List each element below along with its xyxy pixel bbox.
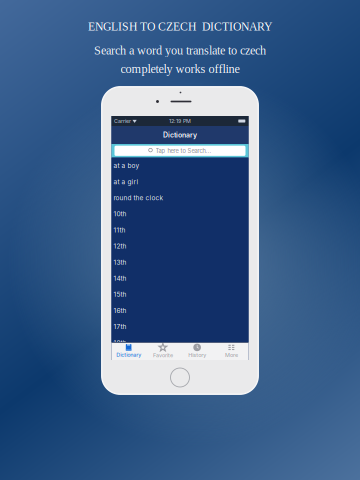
staticText: at a girl	[113, 178, 138, 186]
staticText: Carrier	[114, 118, 131, 124]
button[interactable]: 11th	[111, 222, 248, 238]
staticText: 10th	[113, 210, 126, 218]
staticText: at a boy	[113, 162, 139, 170]
staticText: Dictionary	[116, 351, 141, 358]
button[interactable]: 15th	[111, 286, 248, 302]
button[interactable]: Tap here to Search...	[111, 144, 248, 158]
button[interactable]: 18th	[111, 335, 248, 351]
button[interactable]: More	[214, 342, 248, 360]
staticText: History	[188, 352, 206, 358]
staticText: 13th	[113, 258, 126, 266]
button[interactable]: at a boy	[111, 158, 248, 174]
staticText: 16th	[113, 307, 126, 314]
staticText: Dictionary	[163, 131, 197, 139]
staticText: round the clock	[113, 194, 163, 202]
staticText: More	[225, 352, 238, 358]
staticText: 18th	[113, 339, 126, 347]
button[interactable]: 10th	[111, 206, 248, 222]
button[interactable]: 14th	[111, 270, 248, 286]
button[interactable]: 17th	[111, 319, 248, 335]
button[interactable]: Dictionary	[111, 342, 146, 360]
staticText: completely works offline	[120, 62, 239, 76]
button[interactable]: at a girl	[111, 174, 248, 190]
button[interactable]: 12th	[111, 238, 248, 254]
button[interactable]: 16th	[111, 302, 248, 319]
staticText: 12th	[113, 242, 126, 250]
staticText: Tap here to Search...	[156, 147, 212, 154]
staticText: 15th	[113, 290, 126, 298]
staticText: Search a word you translate to czech	[94, 43, 266, 57]
button[interactable]: 13th	[111, 254, 248, 270]
staticText: Favorite	[153, 352, 173, 359]
staticText: ENGLISH TO CZECH DICTIONARY	[88, 20, 272, 33]
button[interactable]: History	[180, 342, 214, 360]
button[interactable]: round the clock	[111, 190, 248, 206]
staticText: 11th	[113, 226, 125, 234]
staticText: 12:19 PM	[169, 118, 191, 124]
button[interactable]: Favorite	[146, 342, 180, 360]
staticText: 14th	[113, 274, 126, 282]
staticText: 17th	[113, 323, 126, 331]
